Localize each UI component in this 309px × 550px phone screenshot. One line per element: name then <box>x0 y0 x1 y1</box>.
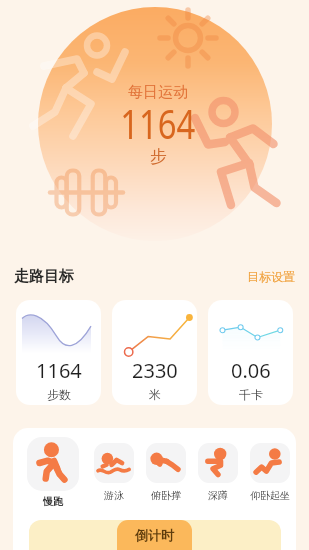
staticText: 游泳 <box>104 489 124 502</box>
button[interactable]: 0.06 <box>208 300 293 405</box>
staticText: 倒计时 <box>135 527 174 543</box>
staticText: 1164 <box>36 357 82 384</box>
staticText: 俯卧撑 <box>151 489 181 502</box>
button[interactable]: 2330 <box>112 300 197 405</box>
button[interactable]: 倒计时 <box>117 520 192 550</box>
staticText: 0.06 <box>231 357 271 384</box>
button[interactable]: 仰卧起坐 <box>244 443 296 502</box>
staticText: 千卡 <box>239 387 263 402</box>
button[interactable]: 1164 <box>16 300 101 405</box>
button[interactable]: 俯卧撑 <box>140 443 192 502</box>
staticText: 走路目标 <box>14 267 74 286</box>
staticText: 每日运动 <box>128 83 188 102</box>
button[interactable]: 慢跑 <box>27 437 79 508</box>
staticText: 1164 <box>120 96 196 150</box>
button[interactable]: 游泳 <box>88 443 140 502</box>
staticText: 目标设置 <box>247 269 295 284</box>
staticText: 步 <box>150 146 167 167</box>
button[interactable]: 深蹲 <box>192 443 244 502</box>
staticText: 慢跑 <box>43 495 63 508</box>
button[interactable]: 目标设置 <box>245 265 297 288</box>
staticText: 2330 <box>132 357 178 384</box>
staticText: 深蹲 <box>208 489 228 502</box>
staticText: 米 <box>149 387 161 402</box>
staticText: 仰卧起坐 <box>250 489 290 502</box>
staticText: 步数 <box>47 387 71 402</box>
